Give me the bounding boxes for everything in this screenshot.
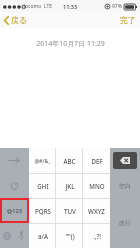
staticText: WXYZ (88, 207, 105, 215)
button[interactable]: ""() (56, 224, 83, 248)
staticText: @#/&_ (34, 157, 51, 164)
button[interactable]: JKL (56, 174, 83, 198)
staticText: 2014年10月7日 11:29 (36, 39, 105, 49)
staticText: PQRS (35, 207, 51, 215)
staticText: 97% (112, 3, 122, 10)
staticText: TUV (64, 207, 76, 215)
staticText: 戻る (11, 15, 28, 25)
staticText: ""() (65, 232, 75, 240)
button[interactable]: WXYZ (83, 199, 110, 223)
button[interactable]: Change keyboard (0, 223, 14, 248)
button[interactable]: .,?! (83, 224, 110, 248)
staticText: 空白 (119, 182, 131, 190)
button[interactable]: Delete (110, 148, 140, 173)
staticText: 11:33 (63, 3, 78, 10)
staticText: 完了 (120, 15, 136, 25)
button[interactable]: ABC (56, 148, 83, 173)
staticText: LTE (44, 3, 53, 10)
button[interactable]: PQRS (29, 199, 56, 223)
staticText: docomo (22, 3, 42, 10)
staticText: 改行 (119, 219, 131, 227)
staticText: DEF (91, 157, 103, 165)
button[interactable]: Dictation (14, 223, 29, 248)
staticText: GHI (37, 182, 49, 190)
button[interactable]: 完了 (116, 13, 140, 27)
staticText: .,?! (93, 232, 101, 240)
staticText: a/A (38, 232, 48, 240)
button[interactable]: a/A (29, 224, 56, 248)
button[interactable]: 空白 (110, 173, 140, 198)
staticText: ABC (63, 157, 76, 165)
button[interactable]: 戻る (0, 13, 32, 27)
button[interactable]: MNO (83, 174, 110, 198)
staticText: MNO (89, 182, 105, 190)
button[interactable]: 改行 (110, 198, 140, 248)
button[interactable]: 123 (0, 198, 29, 223)
staticText: 123 (12, 207, 23, 215)
button[interactable]: GHI (29, 174, 56, 198)
button[interactable]: @#/&_ (29, 148, 56, 173)
button[interactable]: TUV (56, 199, 83, 223)
button[interactable]: DEF (83, 148, 110, 173)
button[interactable]: Next candidate (0, 148, 29, 173)
staticText: JKL (65, 182, 75, 190)
button[interactable]: Undo (0, 173, 29, 198)
